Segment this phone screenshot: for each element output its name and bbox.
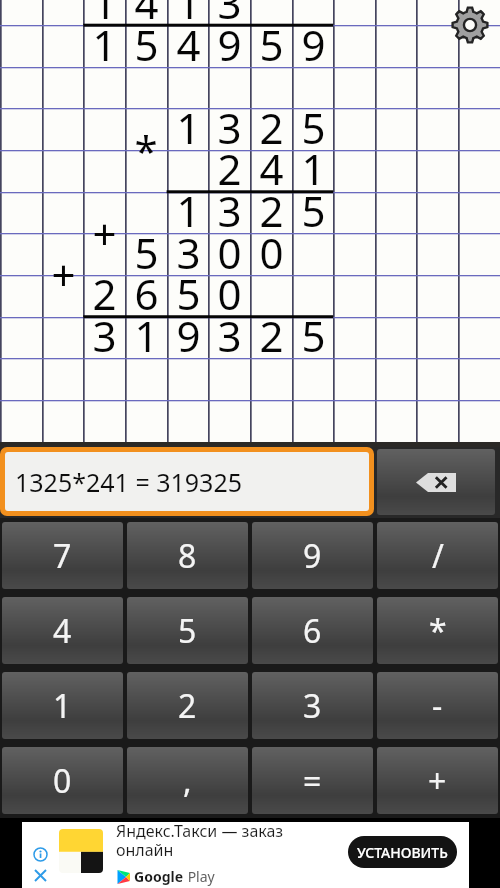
staticText: 3 xyxy=(217,182,242,239)
staticText: 9 xyxy=(217,16,242,73)
staticText: 1 xyxy=(176,0,201,31)
staticText: 9 xyxy=(303,534,322,578)
staticText: 2 xyxy=(259,182,284,239)
staticText: 2 xyxy=(217,140,242,197)
staticText: 0 xyxy=(259,224,284,281)
staticText: 3 xyxy=(217,307,242,364)
staticText: 1 xyxy=(92,16,117,73)
staticText: 4 xyxy=(134,0,159,31)
staticText: 4 xyxy=(259,140,284,197)
staticText: / xyxy=(432,534,444,578)
button[interactable]: 3 xyxy=(252,672,373,739)
staticText: , xyxy=(183,759,192,803)
button[interactable]: = xyxy=(252,747,373,814)
staticText: 5 xyxy=(134,16,159,73)
staticText: 7 xyxy=(53,534,72,578)
staticText: 4 xyxy=(53,609,72,653)
staticText: * xyxy=(134,122,158,179)
staticText: 0 xyxy=(53,759,72,803)
button[interactable]: , xyxy=(127,747,248,814)
button[interactable]: 0 xyxy=(2,747,123,814)
staticText: 5 xyxy=(301,99,326,156)
staticText: 9 xyxy=(176,307,201,364)
staticText: 2 xyxy=(178,684,197,728)
button[interactable]: 8 xyxy=(127,522,248,589)
staticText: 3 xyxy=(92,307,117,364)
staticText: 0 xyxy=(217,224,242,281)
staticText: - xyxy=(432,684,443,728)
button[interactable]: 4 xyxy=(2,597,123,664)
staticText: УСТАНОВИТЬ xyxy=(357,843,448,862)
staticText: 1 xyxy=(134,307,159,364)
staticText: 8 xyxy=(178,534,197,578)
button[interactable]: + xyxy=(377,747,498,814)
button[interactable]: 2 xyxy=(127,672,248,739)
button[interactable]: - xyxy=(377,672,498,739)
button[interactable]: 7 xyxy=(2,522,123,589)
staticText: 1 xyxy=(92,0,117,31)
staticText: + xyxy=(92,205,117,262)
button[interactable]: 6 xyxy=(252,597,373,664)
button[interactable]: 9 xyxy=(252,522,373,589)
staticText: 4 xyxy=(176,16,201,73)
staticText: 2 xyxy=(92,265,117,322)
staticText: 3 xyxy=(217,0,242,31)
staticText: 2 xyxy=(259,99,284,156)
staticText: 3 xyxy=(217,99,242,156)
button[interactable]: Ad info xyxy=(33,847,48,862)
staticText: 1 xyxy=(301,140,326,197)
button[interactable]: 1 xyxy=(2,672,123,739)
staticText: Яндекс.Такси — заказ онлайн xyxy=(116,820,284,861)
staticText: 0 xyxy=(217,265,242,322)
staticText: 1325*241 = 319325 xyxy=(15,465,242,499)
staticText: 3 xyxy=(176,224,201,281)
staticText: 6 xyxy=(134,265,159,322)
staticText: + xyxy=(51,246,76,303)
staticText: * xyxy=(429,609,447,653)
staticText: 6 xyxy=(303,609,322,653)
staticText: Play xyxy=(184,867,215,886)
staticText: 5 xyxy=(134,224,159,281)
staticText: 5 xyxy=(301,307,326,364)
staticText: 5 xyxy=(176,265,201,322)
staticText: 1 xyxy=(176,182,201,239)
staticText: 5 xyxy=(259,16,284,73)
staticText: 1 xyxy=(176,99,201,156)
staticText: 1 xyxy=(53,684,72,728)
button[interactable]: 5 xyxy=(127,597,248,664)
button[interactable]: Settings xyxy=(447,2,493,48)
staticText: = xyxy=(303,759,322,803)
staticText: 2 xyxy=(259,307,284,364)
button[interactable]: * xyxy=(377,597,498,664)
button[interactable]: УСТАНОВИТЬ xyxy=(348,836,457,868)
staticText: 5 xyxy=(178,609,197,653)
button[interactable]: Backspace xyxy=(377,449,495,515)
button[interactable]: Close ad xyxy=(33,868,48,883)
staticText: 5 xyxy=(301,182,326,239)
button[interactable]: / xyxy=(377,522,498,589)
staticText: 9 xyxy=(301,16,326,73)
staticText: + xyxy=(428,759,447,803)
staticText: Google xyxy=(134,867,184,886)
button[interactable]: 1325*241 = 319325 xyxy=(5,452,369,511)
staticText: 3 xyxy=(303,684,322,728)
